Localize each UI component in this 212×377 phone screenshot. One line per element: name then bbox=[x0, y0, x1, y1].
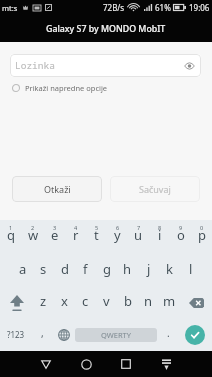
button[interactable]: c bbox=[75, 286, 96, 319]
button[interactable]: Home bbox=[66, 351, 106, 377]
staticText: u bbox=[134, 226, 143, 244]
button[interactable]: ?123 bbox=[0, 319, 32, 351]
staticText: z bbox=[40, 292, 47, 310]
staticText: x bbox=[61, 292, 68, 310]
staticText: p bbox=[198, 226, 206, 244]
button[interactable]: n bbox=[138, 286, 159, 319]
button[interactable]: Enter bbox=[185, 325, 205, 345]
staticText: ?123 bbox=[7, 329, 25, 340]
staticText: f bbox=[83, 260, 88, 278]
button[interactable]: 7 bbox=[128, 220, 149, 253]
button[interactable]: k bbox=[159, 253, 180, 286]
button[interactable]: d bbox=[54, 253, 75, 286]
button[interactable]: f bbox=[75, 253, 96, 286]
staticText: Galaxy S7 by MONDO MobIT bbox=[46, 23, 166, 35]
button[interactable]: a bbox=[12, 253, 33, 286]
staticText: g bbox=[103, 260, 111, 278]
button[interactable]: QWERTY bbox=[74, 319, 158, 351]
staticText: c bbox=[82, 292, 89, 310]
staticText: Otkaži bbox=[44, 183, 71, 195]
button[interactable]: Change language bbox=[53, 319, 74, 351]
staticText: Prikaži napredne opcije bbox=[25, 83, 108, 93]
button[interactable]: Shift bbox=[0, 286, 33, 319]
staticText: e bbox=[51, 226, 59, 244]
button[interactable]: 5 bbox=[86, 220, 107, 253]
staticText: j bbox=[147, 260, 151, 278]
staticText: b bbox=[124, 292, 132, 310]
button[interactable]: h bbox=[117, 253, 138, 286]
button[interactable]: 9 bbox=[170, 220, 191, 253]
other: Show password bbox=[184, 62, 195, 70]
staticText: 1 bbox=[9, 224, 13, 231]
staticText: s bbox=[40, 260, 47, 278]
staticText: y bbox=[114, 226, 121, 244]
staticText: h bbox=[123, 260, 132, 278]
staticText: v bbox=[103, 292, 110, 310]
button[interactable]: l bbox=[180, 253, 201, 286]
staticText: 8 bbox=[158, 224, 162, 231]
staticText: t bbox=[94, 226, 99, 244]
button[interactable]: 8 bbox=[149, 220, 170, 253]
button[interactable]: 6 bbox=[107, 220, 128, 253]
staticText: k bbox=[166, 260, 173, 278]
staticText: 6 bbox=[116, 224, 120, 231]
button[interactable]: Hide keyboard bbox=[146, 351, 186, 377]
button[interactable]: . bbox=[158, 319, 178, 351]
button[interactable]: m bbox=[159, 286, 180, 319]
button[interactable]: Back bbox=[26, 351, 66, 377]
staticText: 0 bbox=[200, 224, 204, 231]
button[interactable]: x bbox=[54, 286, 75, 319]
button[interactable]: g bbox=[96, 253, 117, 286]
staticText: q bbox=[7, 226, 15, 244]
staticText: m bbox=[163, 292, 176, 310]
staticText: Sačuvaj bbox=[139, 183, 171, 195]
button[interactable]: Backspace bbox=[180, 286, 212, 319]
button[interactable]: , bbox=[32, 319, 53, 351]
staticText: 19:06 bbox=[189, 2, 210, 13]
button[interactable]: Recents bbox=[106, 351, 146, 377]
staticText: , bbox=[41, 326, 44, 340]
button[interactable]: 3 bbox=[44, 220, 65, 253]
staticText: o bbox=[177, 226, 185, 244]
staticText: 3 bbox=[53, 224, 57, 231]
staticText: . bbox=[167, 326, 170, 340]
staticText: 2 bbox=[31, 224, 35, 231]
button[interactable]: b bbox=[117, 286, 138, 319]
staticText: r bbox=[73, 226, 79, 244]
button[interactable]: 1 bbox=[0, 220, 22, 253]
button[interactable]: Lozinka bbox=[10, 54, 201, 77]
staticText: a bbox=[19, 260, 27, 278]
button[interactable]: Prikaži napredne opcije bbox=[12, 80, 108, 95]
staticText: d bbox=[61, 260, 69, 278]
staticText: w bbox=[28, 226, 39, 244]
button[interactable]: 4 bbox=[65, 220, 86, 253]
button[interactable]: 2 bbox=[22, 220, 44, 253]
button[interactable]: 0 bbox=[191, 220, 212, 253]
button[interactable]: z bbox=[33, 286, 54, 319]
staticText: i bbox=[158, 226, 162, 244]
staticText: mt:s bbox=[2, 3, 18, 13]
staticText: 9 bbox=[179, 224, 183, 231]
staticText: n bbox=[144, 292, 153, 310]
button[interactable]: Sačuvaj bbox=[110, 176, 200, 202]
button[interactable]: v bbox=[96, 286, 117, 319]
button[interactable]: j bbox=[138, 253, 159, 286]
staticText: 5 bbox=[95, 224, 99, 231]
staticText: QWERTY bbox=[101, 330, 132, 340]
button[interactable]: s bbox=[33, 253, 54, 286]
staticText: l bbox=[189, 260, 193, 278]
staticText: Lozinka bbox=[15, 59, 55, 72]
staticText: 61% bbox=[155, 2, 171, 13]
staticText: 4 bbox=[74, 224, 78, 231]
staticText: 72B/s bbox=[103, 2, 125, 13]
button[interactable]: Otkaži bbox=[12, 176, 102, 202]
staticText: 7 bbox=[137, 224, 141, 231]
